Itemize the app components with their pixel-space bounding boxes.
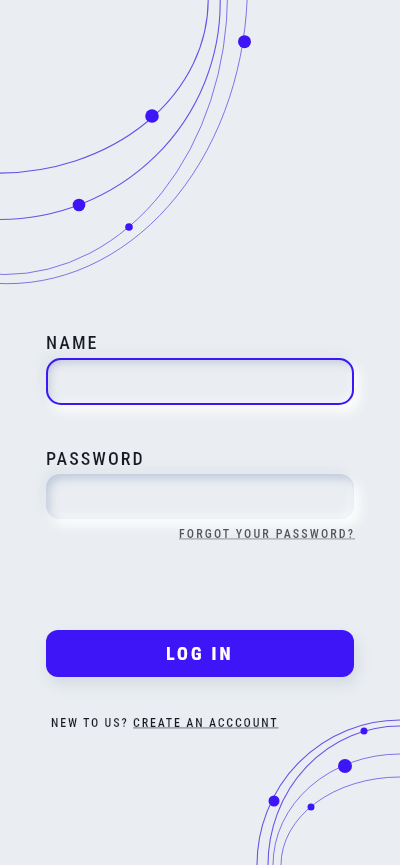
button[interactable] xyxy=(46,358,354,405)
button[interactable] xyxy=(46,474,354,519)
button[interactable]: LOG IN xyxy=(46,630,354,677)
staticText: NAME xyxy=(46,332,99,353)
button[interactable]: FORGOT YOUR PASSWORD? xyxy=(179,527,400,541)
staticText: NEW TO US? xyxy=(51,716,133,730)
button[interactable]: CREATE AN ACCCOUNT xyxy=(133,716,279,730)
staticText: PASSWORD xyxy=(46,448,145,469)
staticText: LOG IN xyxy=(166,643,234,664)
